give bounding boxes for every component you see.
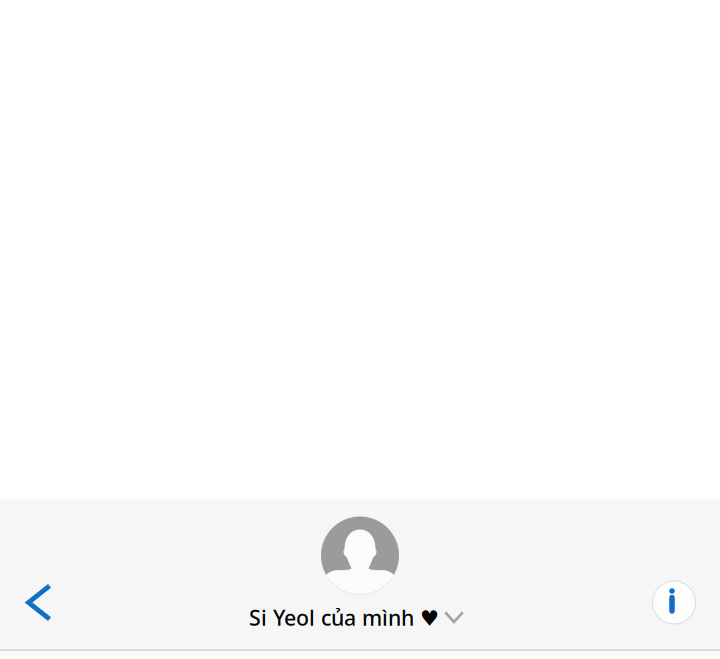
button[interactable]: Back	[11, 574, 67, 630]
staticText: Si Yeol của mình ♥	[249, 603, 439, 632]
button[interactable]: Si Yeol của mình ♥	[210, 516, 510, 628]
button[interactable]: Details	[646, 574, 702, 630]
